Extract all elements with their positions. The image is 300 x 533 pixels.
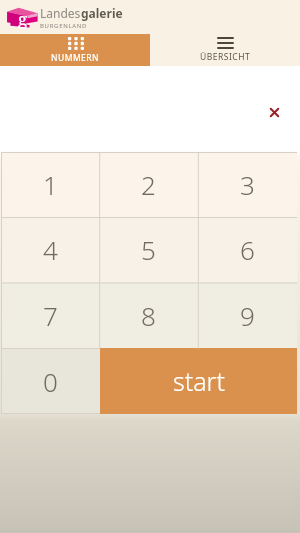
button[interactable]: 3 bbox=[198, 152, 297, 217]
staticText: Landes bbox=[40, 5, 81, 21]
button[interactable]: Clear input bbox=[264, 102, 284, 122]
staticText: NUMMERN bbox=[51, 52, 100, 64]
button[interactable]: NUMMERN bbox=[0, 34, 150, 66]
button[interactable]: start bbox=[100, 348, 297, 414]
staticText: 7 bbox=[43, 298, 58, 333]
staticText: 4 bbox=[43, 232, 58, 267]
button[interactable]: 4 bbox=[1, 217, 99, 282]
button[interactable]: 6 bbox=[198, 217, 297, 282]
staticText: galerie bbox=[81, 5, 123, 21]
button[interactable]: ÜBERSICHT bbox=[150, 34, 300, 66]
staticText: 2 bbox=[141, 167, 156, 202]
staticText: 5 bbox=[141, 232, 156, 267]
button[interactable]: 8 bbox=[99, 282, 198, 348]
button[interactable]: 9 bbox=[198, 282, 297, 348]
staticText: 8 bbox=[141, 298, 156, 333]
staticText: 9 bbox=[240, 298, 255, 333]
staticText: ÜBERSICHT bbox=[200, 51, 251, 63]
staticText: g bbox=[18, 7, 28, 29]
button[interactable]: 1 bbox=[1, 152, 99, 217]
staticText: 6 bbox=[240, 232, 255, 267]
staticText: 1 bbox=[43, 167, 58, 202]
button[interactable]: 0 bbox=[1, 348, 100, 414]
button[interactable]: 7 bbox=[1, 282, 99, 348]
button[interactable]: 2 bbox=[99, 152, 198, 217]
button[interactable]: 5 bbox=[99, 217, 198, 282]
staticText: 3 bbox=[240, 167, 255, 202]
staticText: 0 bbox=[43, 364, 58, 399]
staticText: BURGENLAND bbox=[40, 22, 88, 30]
staticText: start bbox=[173, 364, 225, 398]
